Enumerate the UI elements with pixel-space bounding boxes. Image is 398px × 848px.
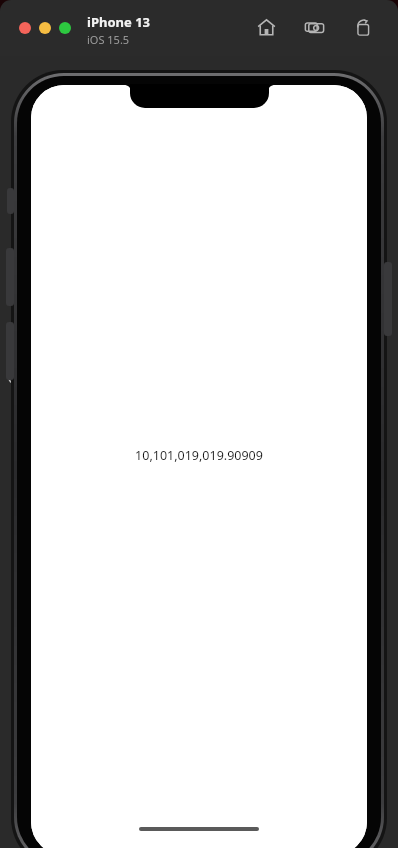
staticText: 10,101,019,019.90909 bbox=[135, 447, 263, 464]
button[interactable]: Screenshot bbox=[301, 14, 327, 40]
button[interactable]: Zoom bbox=[59, 22, 71, 34]
button[interactable]: Close bbox=[19, 22, 31, 34]
button[interactable]: Home bbox=[253, 14, 279, 40]
staticText: iOS 15.5 bbox=[87, 32, 130, 47]
button[interactable]: 10,101,019,019.90909 bbox=[135, 447, 263, 464]
staticText: iPhone 13 bbox=[87, 13, 150, 31]
button[interactable]: Minimize bbox=[39, 22, 51, 34]
button[interactable]: Rotate bbox=[349, 14, 375, 40]
